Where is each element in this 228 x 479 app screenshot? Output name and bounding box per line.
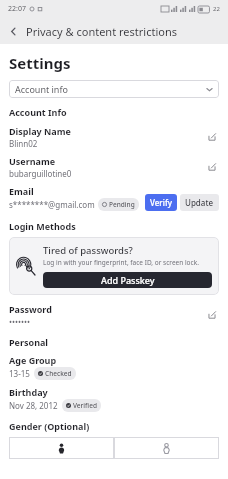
- staticText: Username: [9, 155, 56, 167]
- button[interactable]: Back: [0, 18, 26, 44]
- button[interactable]: Male: [9, 437, 114, 459]
- staticText: Personal: [9, 336, 49, 348]
- staticText: Checked: [45, 369, 72, 378]
- button[interactable]: Verify: [145, 194, 177, 211]
- button[interactable]: Edit: [205, 308, 219, 322]
- staticText: Display Name: [9, 125, 71, 137]
- button[interactable]: Edit: [205, 160, 219, 174]
- staticText: 13-15: [9, 368, 30, 379]
- staticText: Gender (Optional): [9, 420, 90, 432]
- staticText: Login Methods: [9, 220, 76, 232]
- staticText: Nov 28, 2012: [9, 400, 58, 411]
- button[interactable]: Add Passkey: [43, 272, 212, 288]
- staticText: Verified: [73, 401, 97, 410]
- staticText: Settings: [9, 53, 71, 73]
- button[interactable]: Female: [114, 437, 219, 459]
- staticText: Password: [9, 303, 52, 315]
- button[interactable]: Account info: [9, 80, 219, 98]
- staticText: Account info: [15, 83, 68, 95]
- staticText: Privacy & content restrictions: [26, 24, 177, 39]
- button[interactable]: Edit: [205, 130, 219, 144]
- staticText: 22:07: [8, 4, 26, 14]
- staticText: Age Group: [9, 354, 57, 366]
- staticText: Update: [185, 197, 214, 208]
- staticText: Pending: [109, 200, 135, 209]
- button[interactable]: Update: [180, 194, 219, 211]
- staticText: Birthday: [9, 386, 48, 398]
- staticText: s********@gmail.com: [9, 199, 95, 210]
- staticText: Add Passkey: [101, 274, 155, 286]
- staticText: Blinn02: [9, 138, 38, 149]
- staticText: Account Info: [9, 106, 67, 118]
- staticText: bubarguillotine0: [9, 168, 72, 179]
- staticText: Tired of passwords?: [43, 244, 133, 257]
- staticText: 22: [213, 5, 220, 13]
- staticText: Verify: [150, 197, 172, 208]
- staticText: •••••••: [9, 316, 31, 327]
- staticText: Email: [9, 185, 34, 197]
- staticText: Log in with your fingerprint, face ID, o…: [43, 258, 199, 267]
